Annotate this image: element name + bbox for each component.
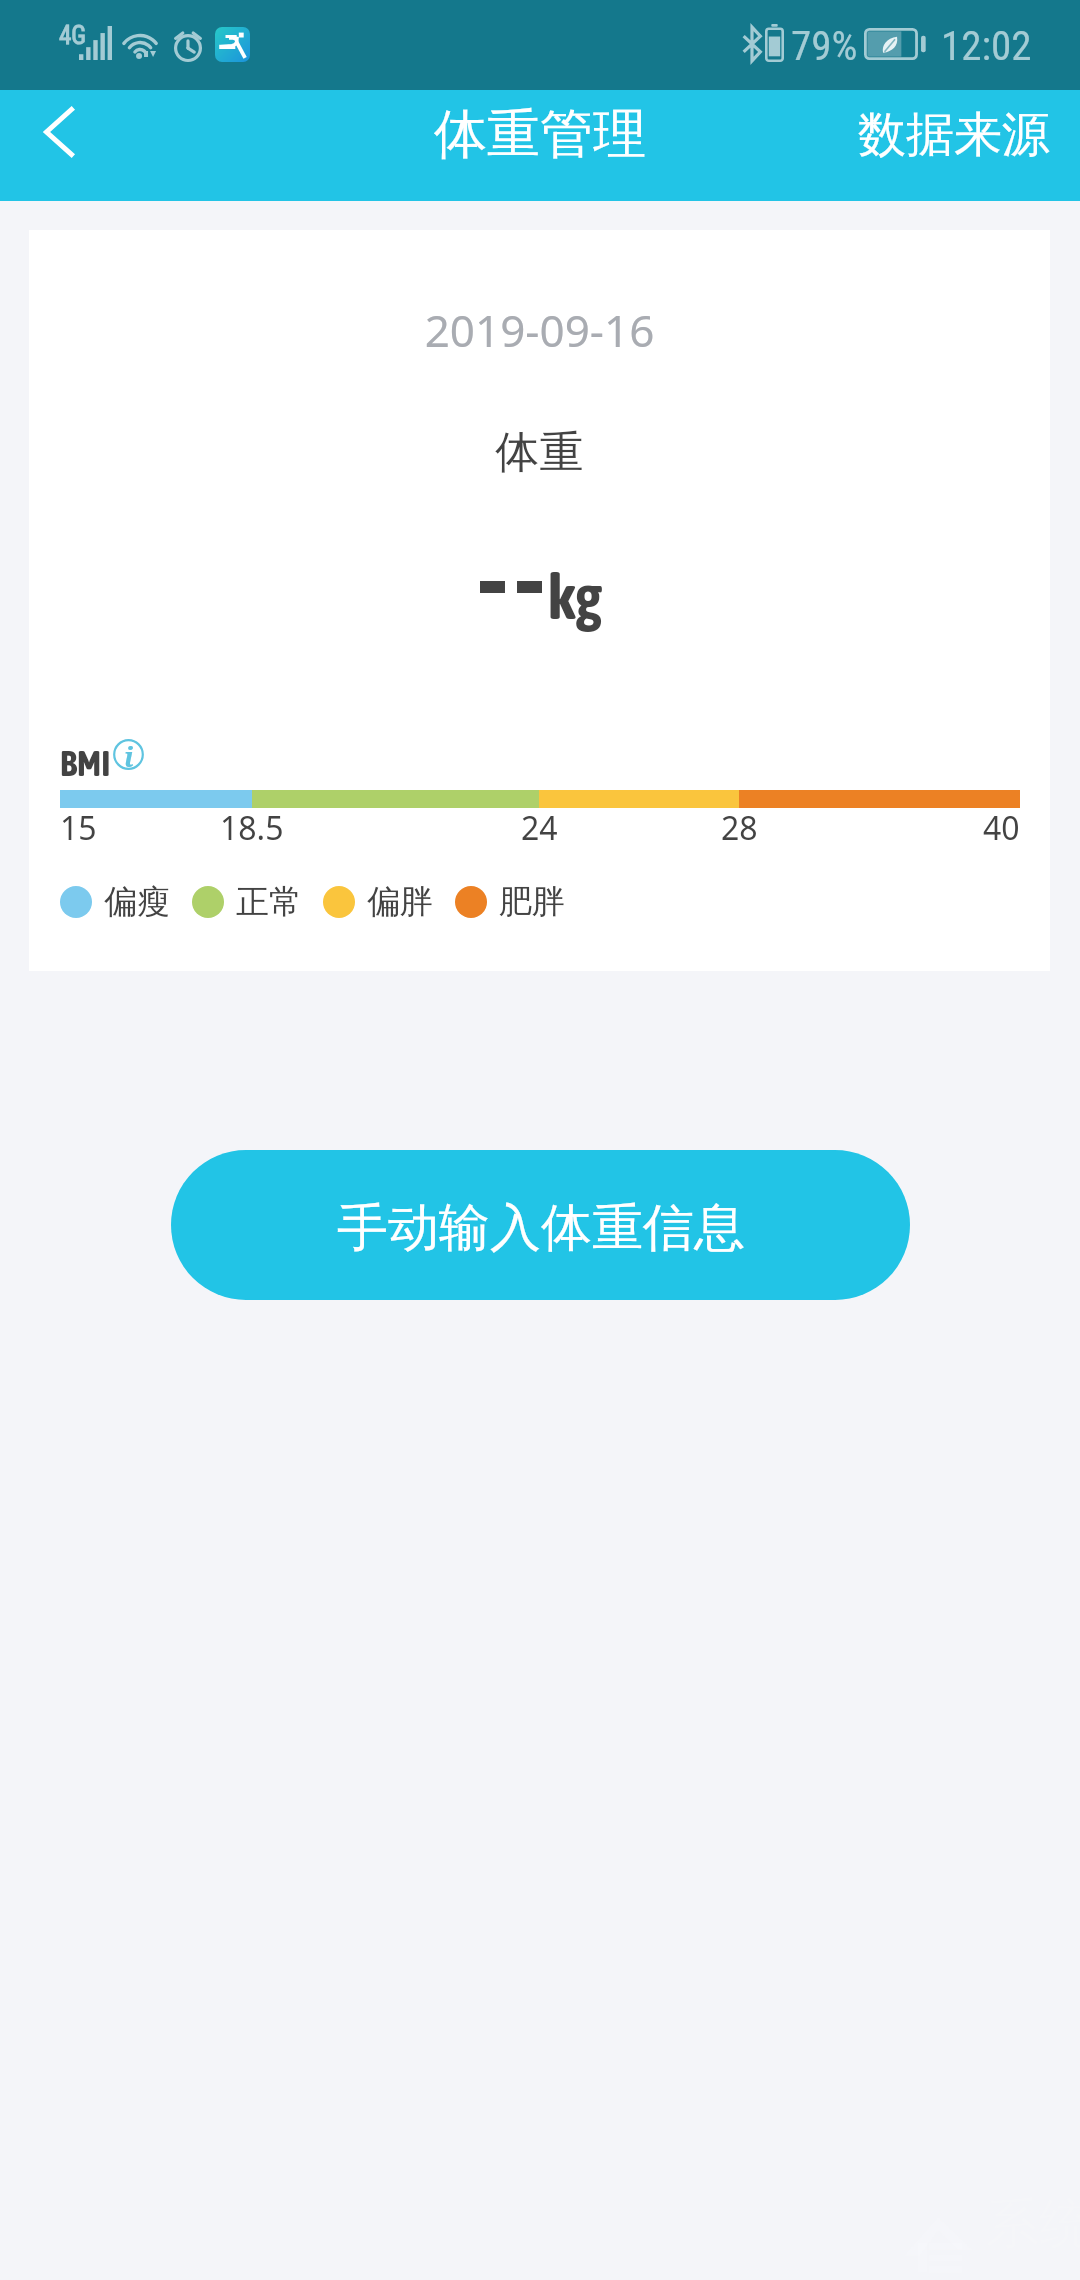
staticText: 79% — [791, 22, 858, 70]
button[interactable]: 数据来源 — [828, 79, 1080, 190]
staticText: 4G — [59, 21, 87, 50]
staticText: BMI — [60, 742, 111, 783]
staticText: 偏瘦 — [104, 881, 170, 923]
staticText: 24 — [521, 806, 558, 850]
staticText: 数据来源 — [858, 105, 1050, 165]
staticText: i — [124, 738, 134, 769]
staticText: 体重管理 — [434, 101, 646, 168]
staticText: 40 — [983, 806, 1020, 850]
staticText: 15 — [60, 806, 97, 850]
staticText: 正常 — [236, 881, 302, 923]
staticText: 2019-09-16 — [29, 300, 1050, 360]
button[interactable]: 手动输入体重信息 — [171, 1150, 910, 1300]
staticText: 体重 — [29, 425, 1050, 480]
button[interactable]: Back — [14, 76, 104, 187]
staticText: 28 — [721, 806, 758, 850]
staticText: 12:02 — [941, 22, 1032, 70]
staticText: 偏胖 — [367, 881, 433, 923]
staticText: 手动输入体重信息 — [337, 1196, 745, 1260]
staticText: 18.5 — [220, 806, 284, 850]
button[interactable]: BMI info — [113, 739, 144, 770]
staticText: kg — [548, 561, 602, 632]
staticText: 肥胖 — [499, 881, 565, 923]
